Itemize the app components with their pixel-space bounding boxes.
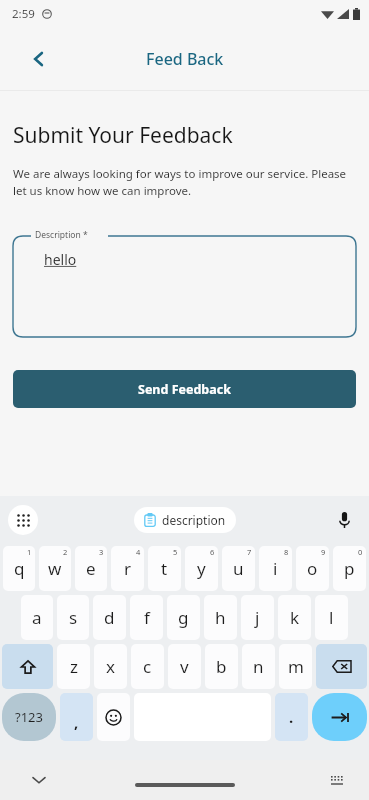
button[interactable]: l — [315, 595, 348, 640]
button[interactable]: s — [57, 595, 89, 640]
button[interactable]: Back — [22, 42, 56, 76]
staticText: k — [290, 606, 300, 629]
button[interactable]: v — [168, 644, 201, 689]
staticText: 6 — [210, 547, 215, 557]
button[interactable]: m — [279, 644, 312, 689]
button[interactable]: ?123 — [2, 693, 56, 741]
button[interactable]: w — [39, 546, 71, 591]
button[interactable]: b — [205, 644, 238, 689]
staticText: x — [106, 655, 115, 678]
button[interactable]: t — [148, 546, 181, 591]
staticText: . — [289, 707, 294, 727]
staticText: b — [216, 655, 227, 678]
staticText: i — [273, 557, 278, 580]
button[interactable]: e — [75, 546, 107, 591]
staticText: y — [197, 557, 206, 580]
button[interactable]: . — [275, 693, 308, 741]
staticText: d — [104, 606, 115, 629]
staticText: v — [180, 655, 189, 678]
button[interactable]: Hide keyboard — [26, 767, 52, 793]
staticText: a — [32, 606, 42, 629]
staticText: 3 — [99, 547, 104, 557]
staticText: l — [329, 606, 334, 629]
button[interactable]: r — [111, 546, 144, 591]
staticText: q — [14, 557, 25, 580]
button[interactable]: z — [57, 644, 90, 689]
staticText: 9 — [321, 547, 326, 557]
staticText: 8 — [284, 547, 289, 557]
staticText: m — [288, 655, 304, 678]
button[interactable]: , — [60, 693, 93, 741]
staticText: We are always looking for ways to improv… — [13, 166, 356, 199]
button[interactable]: g — [167, 595, 200, 640]
staticText: p — [344, 557, 355, 580]
staticText: 7 — [247, 547, 252, 557]
staticText: 2:59 — [12, 6, 35, 22]
button[interactable]: Enter — [312, 693, 367, 741]
staticText: n — [253, 655, 264, 678]
button[interactable]: x — [94, 644, 127, 689]
staticText: e — [86, 557, 96, 580]
staticText: ?123 — [15, 708, 43, 726]
button[interactable]: j — [241, 595, 274, 640]
button[interactable]: Description * — [13, 229, 356, 337]
button[interactable]: Voice input — [331, 507, 357, 533]
staticText: z — [70, 655, 78, 678]
staticText: u — [233, 557, 244, 580]
button[interactable]: Backspace — [316, 644, 367, 689]
button[interactable]: description — [144, 507, 226, 533]
staticText: o — [307, 557, 318, 580]
staticText: s — [69, 606, 78, 629]
staticText: 4 — [136, 547, 141, 557]
staticText: j — [255, 606, 260, 629]
staticText: Send Feedback — [138, 381, 231, 398]
staticText: Description * — [35, 229, 88, 241]
staticText: 1 — [27, 547, 32, 557]
staticText: f — [144, 606, 150, 629]
button[interactable]: i — [259, 546, 292, 591]
button[interactable]: f — [130, 595, 163, 640]
button[interactable]: c — [131, 644, 164, 689]
button[interactable]: Send Feedback — [13, 370, 356, 408]
staticText: Submit Your Feedback — [13, 121, 233, 150]
button[interactable]: h — [204, 595, 237, 640]
staticText: 0 — [358, 547, 363, 557]
staticText: 2 — [63, 547, 68, 557]
button[interactable]: q — [3, 546, 35, 591]
button[interactable]: y — [185, 546, 218, 591]
button[interactable]: Emoji — [97, 693, 130, 741]
staticText: description — [162, 512, 226, 528]
button[interactable]: Keyboard options — [8, 505, 38, 535]
staticText: 5 — [173, 547, 178, 557]
button[interactable]: o — [296, 546, 329, 591]
staticText: r — [124, 557, 132, 580]
button[interactable]: Shift — [2, 644, 53, 689]
staticText: , — [74, 712, 79, 732]
staticText: g — [178, 606, 189, 629]
staticText: w — [48, 557, 62, 580]
button[interactable]: Change keyboard — [327, 770, 347, 790]
staticText: hello — [44, 250, 77, 269]
staticText: t — [161, 557, 168, 580]
button[interactable]: n — [242, 644, 275, 689]
staticText: c — [143, 655, 152, 678]
button[interactable]: a — [21, 595, 53, 640]
button[interactable]: d — [93, 595, 126, 640]
button[interactable]: p — [333, 546, 366, 591]
button[interactable]: u — [222, 546, 255, 591]
button[interactable]: k — [278, 595, 311, 640]
staticText: Feed Back — [146, 48, 224, 70]
staticText: h — [215, 606, 226, 629]
